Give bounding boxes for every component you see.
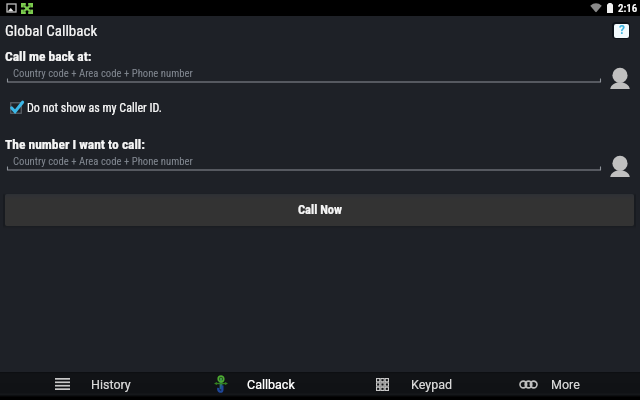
button[interactable]: More [506, 372, 601, 396]
staticText: ? [619, 24, 625, 37]
staticText: Do not show as my Caller ID. [27, 101, 162, 115]
button[interactable]: Do not show as my Caller ID. [10, 100, 162, 116]
staticText: History [91, 377, 131, 392]
button[interactable]: Call Now [5, 194, 634, 226]
staticText: 2:16 [618, 2, 638, 15]
button[interactable]: Callback [199, 372, 297, 396]
button[interactable]: Choose contact [609, 156, 631, 177]
staticText: Country code + Area code + Phone number [13, 155, 193, 168]
button[interactable]: History [40, 372, 141, 396]
staticText: Global Callback [5, 22, 98, 40]
button[interactable]: Help [612, 22, 630, 39]
staticText: More [551, 377, 580, 392]
staticText: Country code + Area code + Phone number [13, 67, 193, 80]
staticText: Keypad [411, 377, 453, 392]
button[interactable]: Country code + Area code + Phone number [5, 67, 601, 83]
staticText: Call Now [298, 202, 342, 217]
button[interactable]: Keypad [360, 372, 461, 396]
staticText: Callback [247, 377, 295, 392]
button[interactable]: Country code + Area code + Phone number [5, 155, 601, 171]
staticText: Call me back at: [5, 48, 92, 64]
button[interactable]: Choose contact [609, 68, 631, 89]
staticText: The number I want to call: [5, 136, 145, 152]
